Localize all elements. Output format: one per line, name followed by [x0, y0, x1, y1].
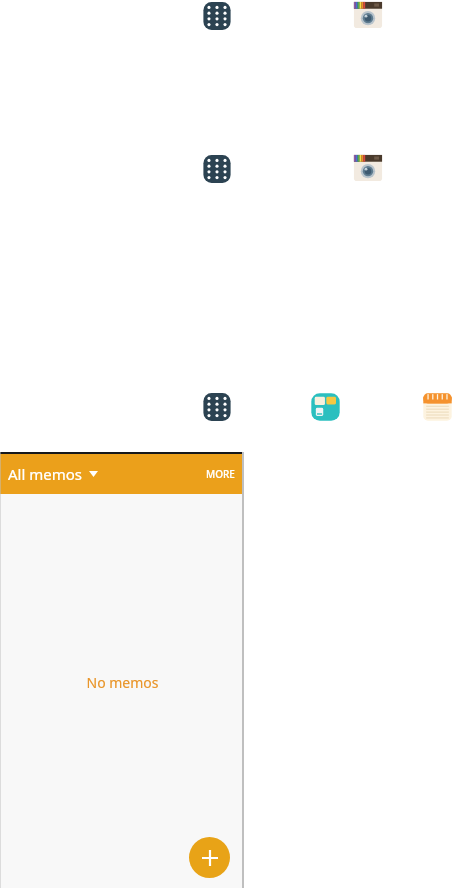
button[interactable]: MORE	[197, 459, 244, 489]
button[interactable]: Instagram	[352, 153, 384, 183]
button[interactable]: My Files	[309, 391, 342, 423]
staticText: MORE	[206, 467, 235, 481]
staticText: No memos	[86, 673, 159, 692]
button[interactable]: All memos	[8, 464, 98, 484]
button[interactable]: Instagram	[352, 0, 384, 30]
button[interactable]: Apps	[200, 1, 234, 31]
button[interactable]: New memo	[189, 837, 230, 878]
button[interactable]: Apps	[200, 392, 234, 422]
staticText: All memos	[8, 464, 82, 484]
button[interactable]: Apps	[200, 154, 234, 184]
button[interactable]: Memo	[421, 391, 454, 423]
